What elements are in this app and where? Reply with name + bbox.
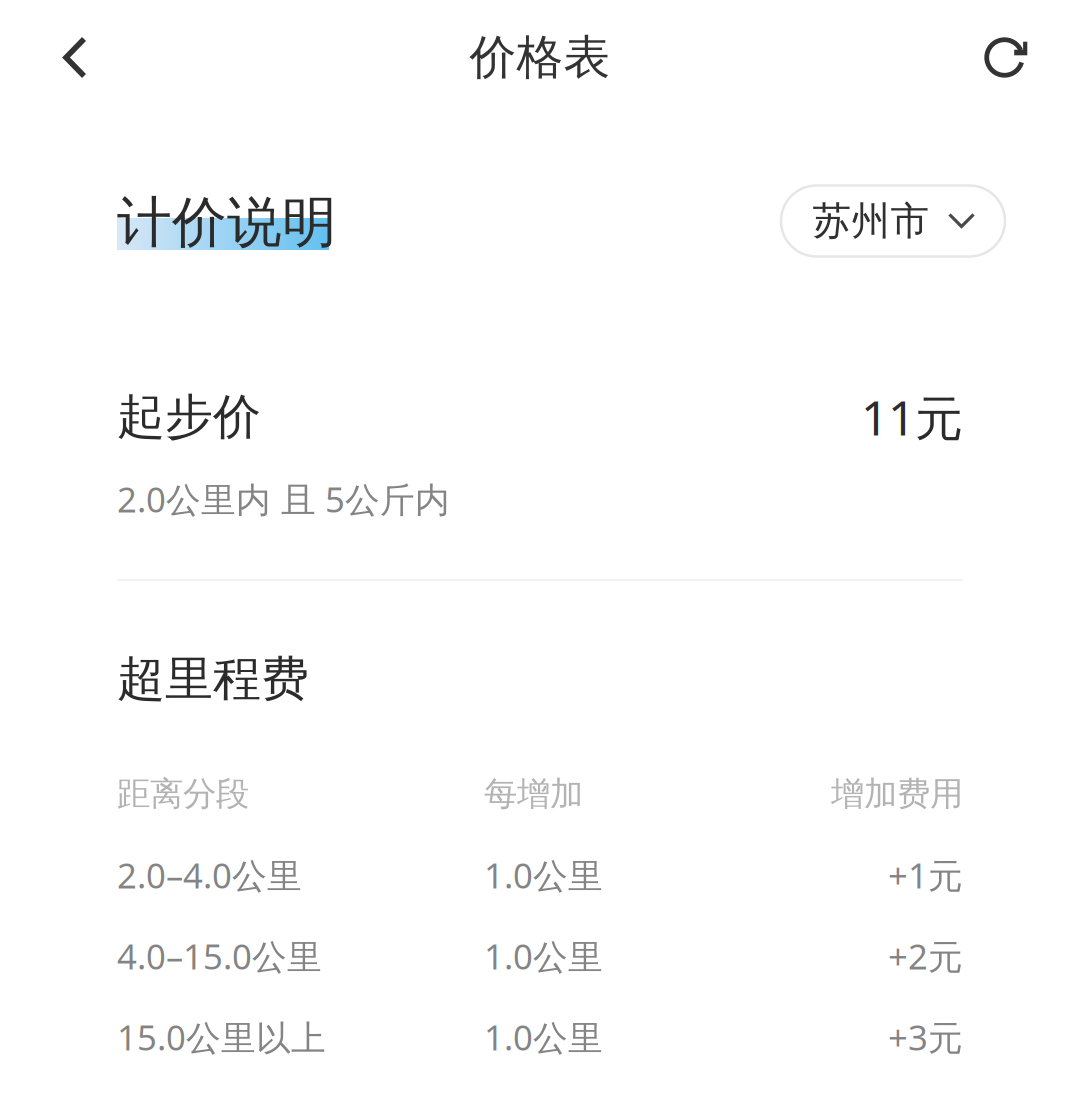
staticText: 4.0–15.0公里 xyxy=(117,933,322,979)
staticText: 15.0公里以上 xyxy=(117,1014,326,1060)
staticText: 计价说明 xyxy=(117,189,337,256)
staticText: 增加费用 xyxy=(831,773,963,814)
staticText: 11元 xyxy=(861,385,963,449)
button[interactable]: 苏州市 xyxy=(781,191,1005,262)
staticText: 每增加 xyxy=(484,773,583,814)
staticText: +2元 xyxy=(888,933,963,979)
button[interactable]: Refresh xyxy=(954,9,1050,105)
staticText: 苏州市 xyxy=(812,197,929,245)
staticText: 价格表 xyxy=(469,29,610,86)
staticText: 2.0–4.0公里 xyxy=(117,852,302,898)
staticText: +1元 xyxy=(888,852,963,898)
staticText: 2.0公里内 且 5公斤内 xyxy=(117,476,450,522)
staticText: 距离分段 xyxy=(117,773,249,814)
staticText: 1.0公里 xyxy=(484,852,603,898)
staticText: 起步价 xyxy=(117,387,261,446)
staticText: 超里程费 xyxy=(117,649,309,708)
staticText: 1.0公里 xyxy=(484,1014,603,1060)
staticText: +3元 xyxy=(888,1014,963,1060)
button[interactable]: Back xyxy=(27,9,123,105)
staticText: 1.0公里 xyxy=(484,933,603,979)
